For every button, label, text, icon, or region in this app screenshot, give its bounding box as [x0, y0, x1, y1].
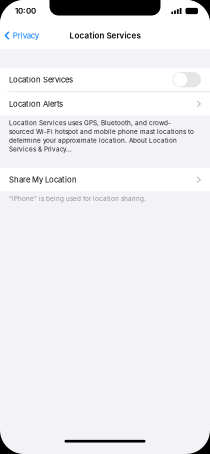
staticText: Location Services [9, 75, 73, 84]
button[interactable]: Location Alerts [0, 92, 210, 116]
staticText: Location Services uses GPS, Bluetooth, a… [9, 119, 194, 153]
staticText: “iPhone” is being used for location shar… [9, 195, 146, 203]
staticText: 10:00 [15, 6, 36, 16]
button[interactable]: Privacy [0, 26, 45, 45]
staticText: Share My Location [9, 175, 77, 184]
staticText: Location Alerts [9, 99, 63, 108]
button[interactable]: Share My Location [0, 168, 210, 191]
staticText: Location Services [69, 31, 140, 40]
button[interactable]: Location Services [0, 68, 210, 91]
staticText: Privacy [13, 31, 39, 40]
